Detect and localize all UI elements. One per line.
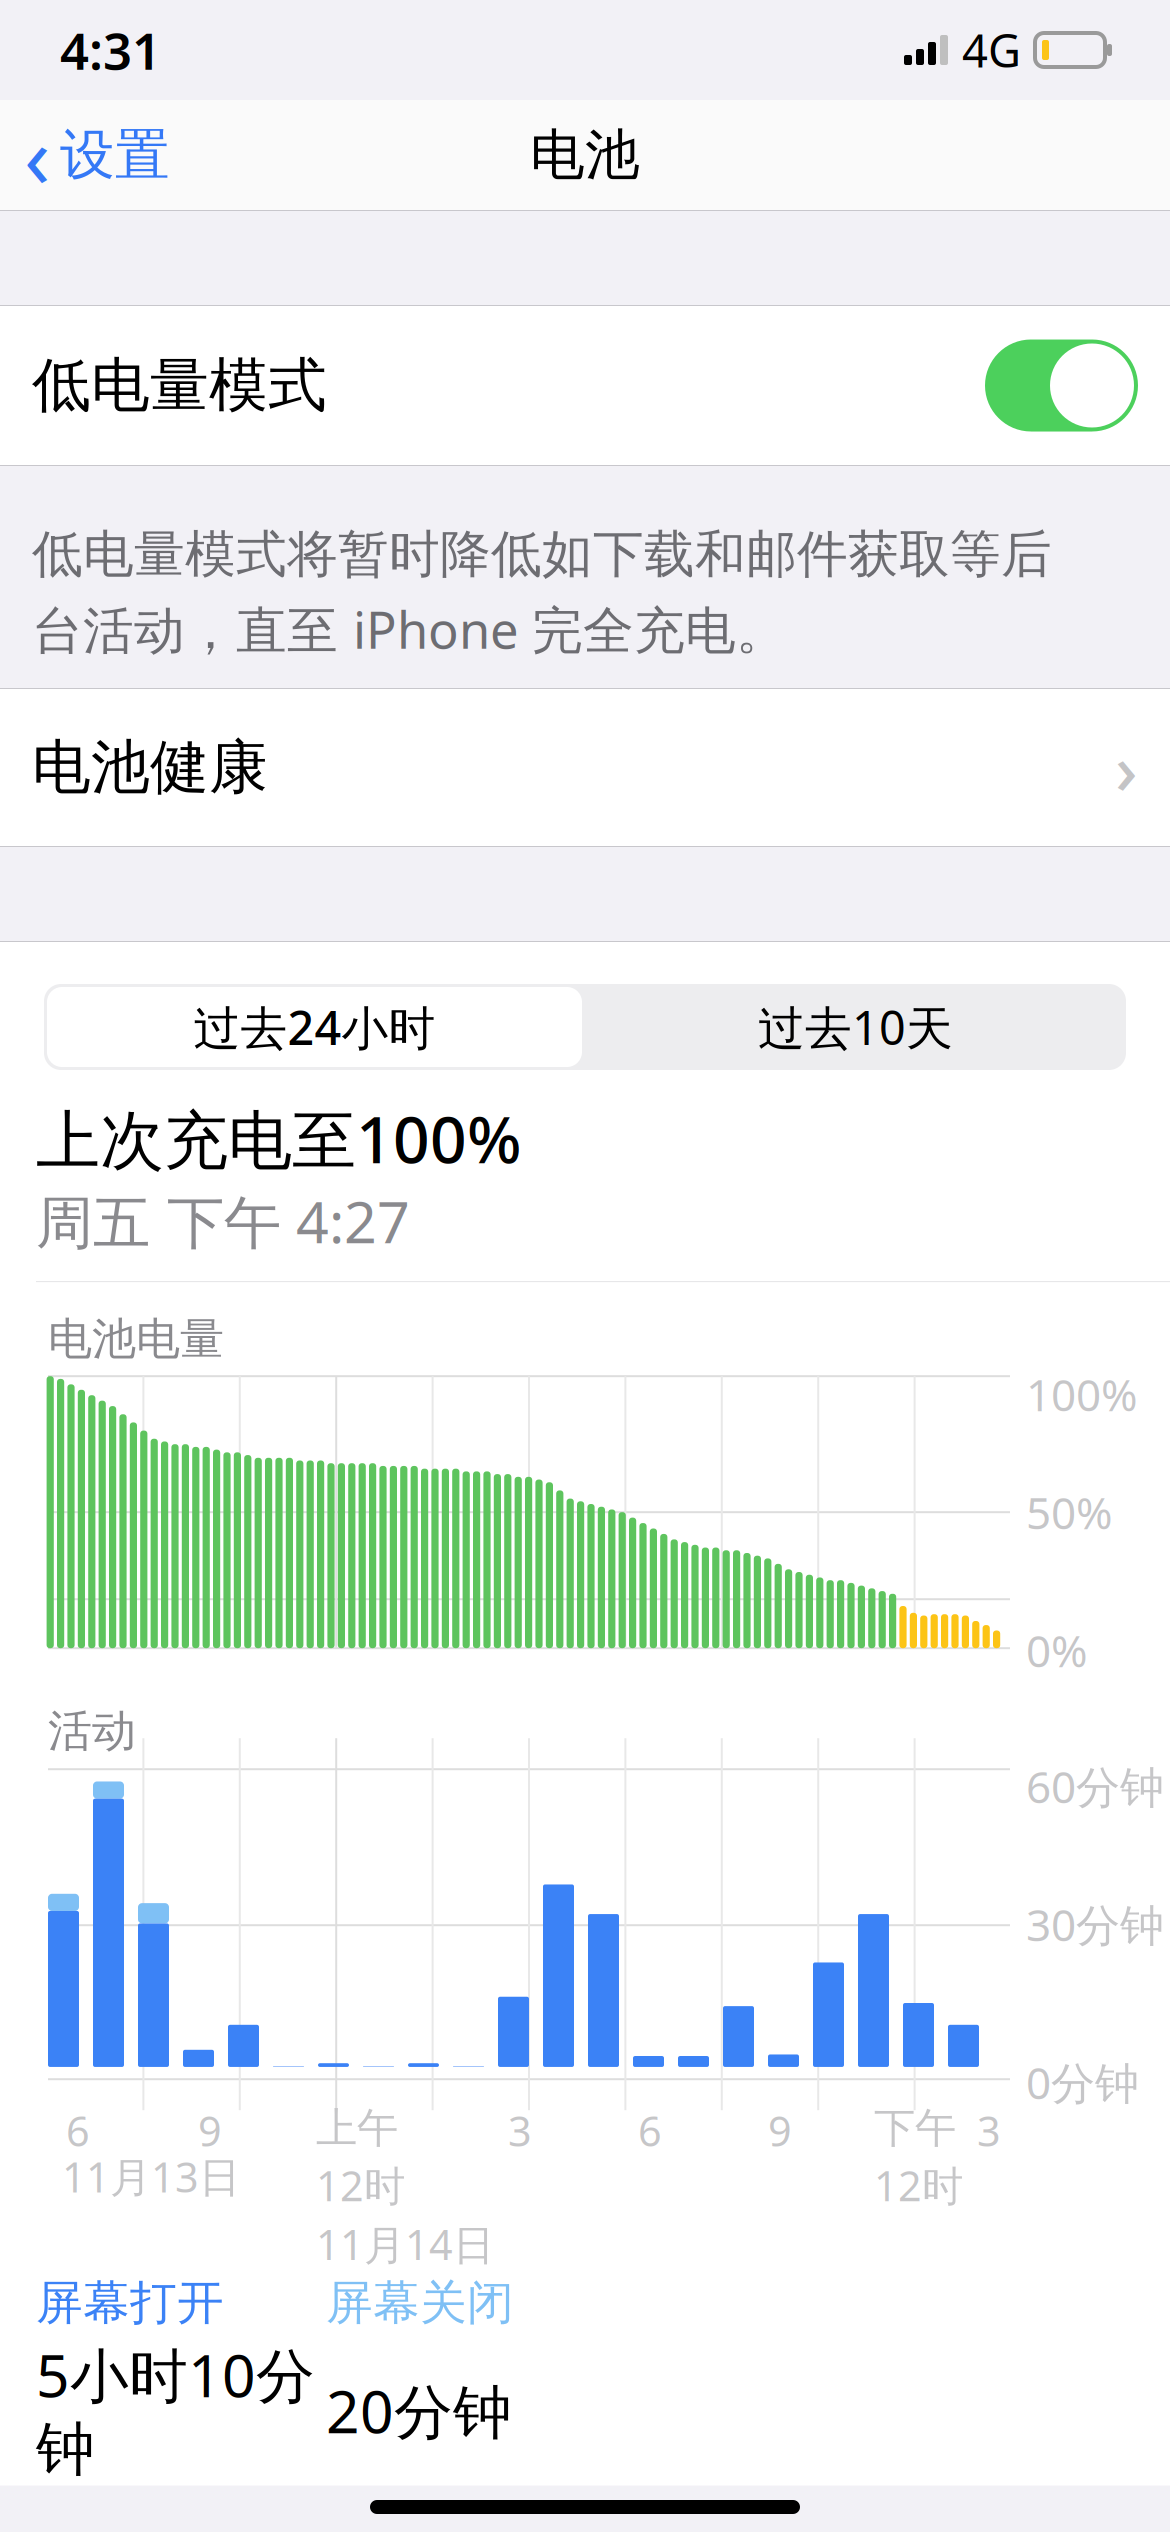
staticText: 电池 [530, 121, 640, 188]
button[interactable]: 电池健康 [0, 689, 1170, 846]
staticText: 0% [1026, 1621, 1088, 1679]
staticText: 电池电量 [48, 1312, 224, 1366]
staticText: 11月14日 [316, 2217, 494, 2271]
staticText: 下午 [874, 2103, 956, 2154]
staticText: 6 [638, 2103, 662, 2158]
staticText: 100% [1026, 1365, 1138, 1423]
staticText: 3 [508, 2103, 532, 2158]
staticText: 上次充电至100% [36, 1096, 522, 1181]
staticText: 9 [768, 2103, 792, 2158]
staticText: 屏幕关闭 [326, 2274, 514, 2331]
staticText: 9 [198, 2103, 222, 2158]
button[interactable]: 过去24小时 [44, 984, 585, 1070]
staticText: 11月13日 [62, 2149, 240, 2204]
staticText: 活动 [48, 1704, 136, 1758]
staticText: 12时 [874, 2158, 963, 2213]
staticText: 4G [962, 20, 1021, 80]
staticText: 过去24小时 [193, 996, 435, 1058]
button[interactable]: 低电量模式 [0, 306, 1170, 465]
staticText: ‹ [24, 98, 50, 212]
staticText: 30分钟 [1026, 1895, 1164, 1953]
button[interactable]: ‹ [0, 88, 170, 222]
staticText: 台活动，直至 iPhone 完全充电。 [32, 595, 787, 663]
staticText: 20分钟 [326, 2372, 512, 2449]
staticText: 6 [66, 2103, 90, 2158]
staticText: 0分钟 [1026, 2053, 1139, 2111]
staticText: 设置 [60, 121, 170, 188]
staticText: 屏幕打开 [36, 2274, 224, 2331]
staticText: 50% [1026, 1483, 1113, 1541]
staticText: 电池健康 [32, 731, 268, 804]
staticText: 5小时10分钟 [36, 2335, 315, 2485]
staticText: 周五 下午 4:27 [36, 1183, 410, 1259]
staticText: 过去10天 [758, 996, 953, 1058]
staticText: 12时 [316, 2158, 405, 2213]
staticText: 4:31 [60, 16, 161, 84]
staticText: 低电量模式将暂时降低如下载和邮件获取等后 [32, 523, 1052, 585]
staticText: 3 [977, 2103, 1001, 2158]
staticText: 上午 [316, 2103, 398, 2154]
staticText: 60分钟 [1026, 1757, 1164, 1815]
staticText: 低电量模式 [32, 349, 327, 422]
button[interactable]: 过去10天 [585, 984, 1126, 1070]
staticText: › [1115, 721, 1138, 814]
